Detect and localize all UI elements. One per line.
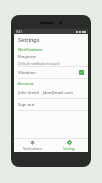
- staticText: Default notification sound: [18, 61, 60, 66]
- button[interactable]: Vibration: [14, 67, 88, 78]
- button[interactable]: Ringtone: [14, 53, 88, 66]
- staticText: Ringtone: [18, 54, 36, 60]
- staticText: Account: [18, 81, 34, 86]
- button[interactable]: Settings: [51, 139, 88, 152]
- staticText: Notifications: [18, 47, 43, 52]
- staticText: Sign out: [18, 102, 35, 108]
- button[interactable]: Notifications: [14, 139, 51, 152]
- staticText: John Smith · jdoe@mail.com: [18, 90, 73, 96]
- staticText: Settings: [63, 147, 76, 151]
- staticText: Notifications: [23, 147, 42, 151]
- staticText: Vibration: [18, 70, 79, 76]
- staticText: 9:41: [16, 30, 22, 34]
- button[interactable]: John Smith · jdoe@mail.com: [14, 87, 88, 98]
- button[interactable]: Sign out: [14, 99, 88, 110]
- staticText: Settings: [18, 36, 40, 43]
